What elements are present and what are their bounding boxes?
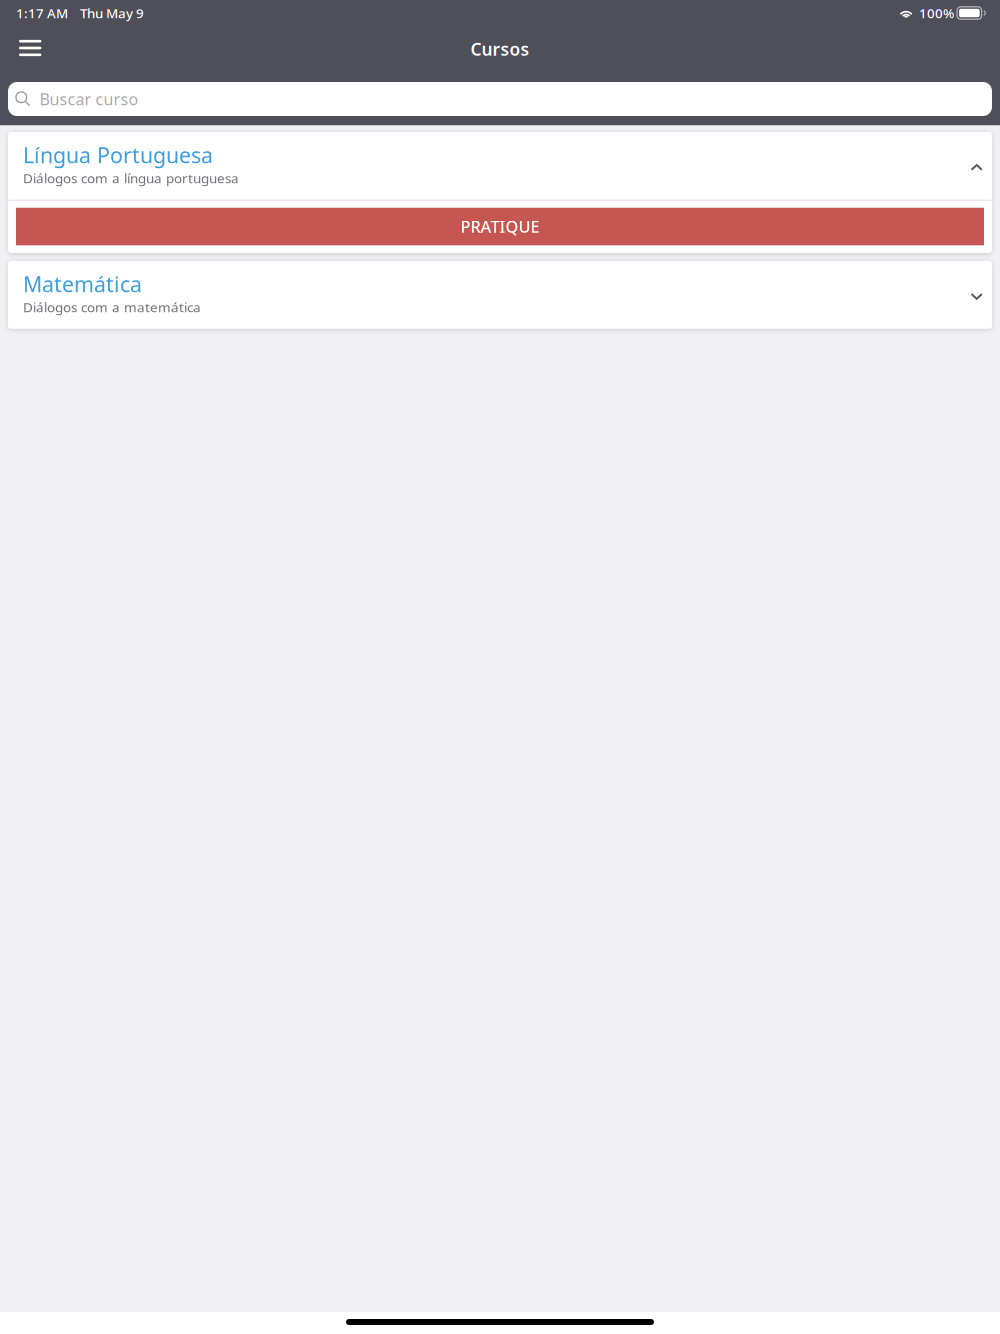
button[interactable]: Língua Portuguesa [8,132,992,200]
button[interactable]: Buscar curso [8,82,992,116]
staticText: Matemática [23,270,142,298]
staticText: Buscar curso [39,88,138,110]
button[interactable]: Matemática [8,261,992,329]
staticText: 100% [919,4,954,22]
staticText: Thu May 9 [80,4,144,22]
staticText: PRATIQUE [460,216,539,237]
staticText: Língua Portuguesa [23,141,213,169]
staticText: Diálogos com a matemática [23,298,201,316]
button[interactable]: Menu [9,32,51,66]
button[interactable]: PRATIQUE [16,208,984,245]
staticText: Cursos [470,37,529,60]
staticText: Diálogos com a língua portuguesa [23,169,239,187]
staticText: 1:17 AM [16,4,68,22]
